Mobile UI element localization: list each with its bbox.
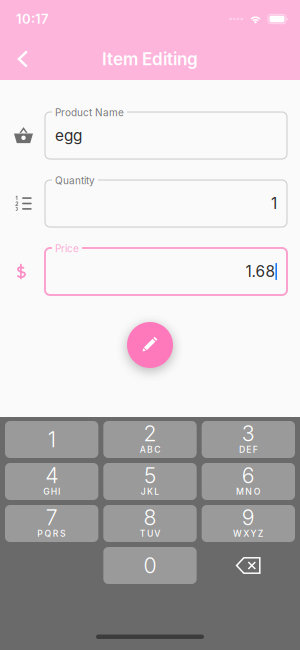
staticText: MNO	[236, 486, 261, 497]
staticText: 1	[48, 427, 56, 452]
staticText: JKL	[141, 486, 159, 497]
staticText: 5	[144, 463, 156, 488]
staticText: Price	[55, 242, 79, 255]
button[interactable]: Delete	[236, 547, 261, 584]
staticText: 4	[45, 463, 58, 488]
button[interactable]: 3	[202, 421, 295, 458]
staticText: egg	[55, 126, 82, 145]
button[interactable]: 1	[5, 421, 98, 458]
staticText: WXYZ	[233, 528, 264, 539]
button[interactable]: 9	[202, 505, 295, 542]
staticText: PQRS	[37, 528, 66, 539]
button[interactable]: 4	[5, 463, 98, 500]
button[interactable]: 8	[103, 505, 197, 542]
staticText: Item Editing	[102, 49, 198, 69]
staticText: 2	[143, 421, 156, 446]
button[interactable]: Edit	[127, 322, 173, 368]
staticText: 3	[242, 421, 255, 446]
button[interactable]: 5	[103, 463, 197, 500]
staticText: 0	[143, 553, 156, 578]
button[interactable]: 2	[103, 421, 197, 458]
staticText: 8	[143, 505, 156, 530]
button[interactable]: Back	[0, 39, 40, 79]
staticText: Quantity	[55, 174, 95, 187]
staticText: TUV	[140, 528, 160, 539]
button[interactable]: 6	[202, 463, 295, 500]
staticText: 6	[242, 463, 255, 488]
staticText: 9	[242, 505, 255, 530]
staticText: 1	[271, 194, 277, 213]
button[interactable]: 0	[103, 547, 197, 584]
staticText: Product Name	[55, 106, 124, 119]
button[interactable]: 7	[5, 505, 98, 542]
staticText: ABC	[140, 444, 160, 455]
staticText: 7	[46, 505, 58, 530]
staticText: 1.68	[245, 262, 274, 281]
staticText: DEF	[239, 444, 258, 455]
staticText: GHI	[43, 486, 60, 497]
staticText: 10:17	[16, 11, 49, 27]
